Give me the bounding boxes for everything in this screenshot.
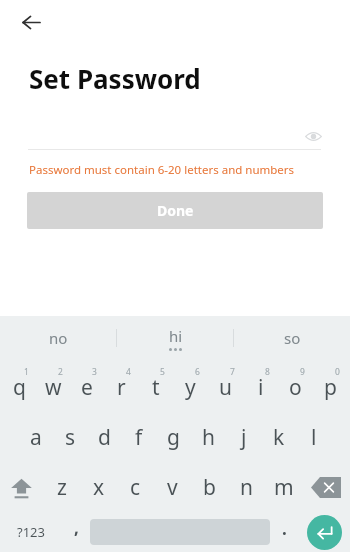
staticText: so (284, 328, 301, 348)
button[interactable]: ?123 (0, 512, 62, 552)
button[interactable]: Shift (0, 462, 43, 512)
staticText: e (81, 373, 93, 402)
button[interactable]: u (208, 362, 243, 412)
staticText: 1 (24, 366, 29, 378)
button[interactable]: . (270, 512, 298, 552)
staticText: . (282, 517, 287, 540)
staticText: ?123 (17, 523, 45, 541)
staticText: h (202, 423, 215, 452)
button[interactable]: q (2, 362, 36, 412)
button[interactable]: Show password (301, 124, 325, 148)
staticText: z (57, 473, 67, 502)
staticText: s (65, 423, 76, 452)
button[interactable]: s (53, 412, 87, 462)
button[interactable]: m (265, 462, 302, 512)
button[interactable]: x (80, 462, 117, 512)
staticText: 0 (335, 366, 340, 378)
button[interactable]: a (19, 412, 53, 462)
button[interactable]: t (138, 362, 173, 412)
staticText: 5 (160, 366, 165, 378)
staticText: r (117, 373, 126, 402)
button[interactable]: e (70, 362, 104, 412)
button[interactable]: l (296, 412, 331, 462)
staticText: Password must contain 6-20 letters and n… (29, 162, 295, 178)
staticText: y (185, 373, 196, 402)
button[interactable]: k (261, 412, 296, 462)
button[interactable]: Done (27, 192, 323, 229)
staticText: n (240, 473, 253, 502)
staticText: t (152, 373, 160, 402)
staticText: j (241, 423, 247, 452)
staticText: v (167, 473, 178, 502)
staticText: o (289, 373, 302, 402)
staticText: u (219, 373, 232, 402)
staticText: k (273, 423, 285, 452)
button[interactable]: z (43, 462, 80, 512)
button[interactable]: o (278, 362, 313, 412)
button[interactable]: w (36, 362, 70, 412)
staticText: hi (169, 326, 183, 346)
staticText: p (324, 373, 337, 402)
staticText: w (45, 373, 62, 402)
button[interactable]: Backspace (302, 462, 350, 512)
button[interactable]: j (226, 412, 261, 462)
button[interactable]: i (243, 362, 278, 412)
button[interactable]: c (117, 462, 154, 512)
button[interactable]: p (313, 362, 348, 412)
staticText: q (13, 373, 26, 402)
button[interactable]: g (156, 412, 191, 462)
staticText: l (311, 423, 317, 452)
button[interactable]: b (191, 462, 228, 512)
button[interactable]: no (0, 316, 116, 360)
staticText: i (258, 373, 264, 402)
staticText: b (203, 473, 216, 502)
button[interactable]: f (121, 412, 156, 462)
button[interactable]: Back (14, 5, 48, 39)
staticText: 2 (58, 366, 63, 378)
button[interactable]: , (62, 512, 90, 552)
staticText: d (98, 423, 111, 452)
button[interactable]: hi (117, 316, 233, 360)
button[interactable]: y (173, 362, 208, 412)
staticText: 3 (92, 366, 97, 378)
button[interactable]: d (87, 412, 121, 462)
button[interactable]: h (191, 412, 226, 462)
staticText: c (130, 473, 141, 502)
staticText: , (74, 516, 79, 539)
staticText: g (167, 423, 180, 452)
staticText: 4 (126, 366, 131, 378)
staticText: 7 (230, 366, 235, 378)
staticText: no (49, 328, 68, 348)
staticText: 9 (300, 366, 305, 378)
staticText: 6 (195, 366, 200, 378)
button[interactable]: Enter (307, 515, 342, 550)
button[interactable]: v (154, 462, 191, 512)
button[interactable]: so (234, 316, 350, 360)
button[interactable]: r (104, 362, 138, 412)
staticText: m (274, 473, 294, 502)
staticText: a (30, 423, 42, 452)
staticText: x (93, 473, 105, 502)
staticText: Set Password (29, 61, 201, 96)
staticText: f (135, 423, 143, 452)
staticText: Done (157, 201, 194, 220)
staticText: 8 (265, 366, 270, 378)
button[interactable]: n (228, 462, 265, 512)
